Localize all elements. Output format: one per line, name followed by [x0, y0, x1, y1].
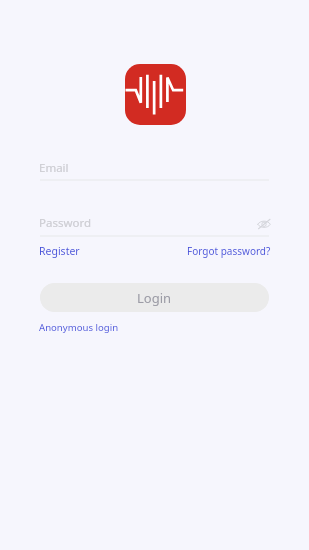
other: App logo — [125, 64, 186, 125]
staticText: Password — [39, 215, 92, 231]
button[interactable]: Email input field — [39, 153, 269, 180]
staticText: Register — [39, 244, 80, 258]
button[interactable]: Forgot password? — [187, 244, 271, 258]
button[interactable]: Anonymous login — [39, 321, 119, 334]
staticText: Anonymous login — [39, 321, 119, 334]
button[interactable]: Show password — [254, 214, 274, 234]
button[interactable]: Password input field — [39, 208, 269, 235]
staticText: Login — [137, 289, 172, 307]
staticText: Forgot password? — [187, 244, 271, 258]
button[interactable]: Login — [40, 283, 269, 312]
staticText: Email — [39, 160, 69, 176]
button[interactable]: Register — [39, 244, 80, 258]
